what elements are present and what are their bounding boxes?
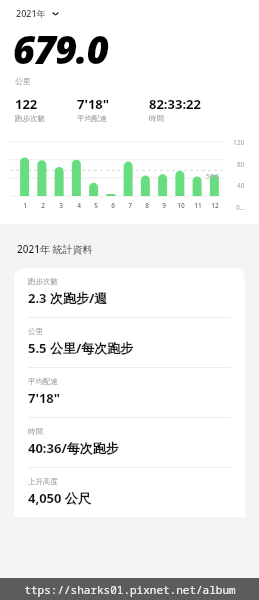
staticText: 9 bbox=[162, 201, 166, 210]
button[interactable]: 跑步次數 bbox=[14, 268, 245, 317]
staticText: 40 bbox=[237, 181, 245, 190]
staticText: 1 bbox=[23, 201, 27, 210]
staticText: 2021年 統計資料 bbox=[17, 242, 93, 256]
staticText: 2.3 次跑步/週 bbox=[28, 289, 108, 307]
staticText: 5.5 公里/每次跑步 bbox=[28, 339, 134, 357]
staticText: 120 bbox=[233, 138, 245, 147]
staticText: 8 bbox=[145, 201, 149, 210]
staticText: 56.6 bbox=[206, 172, 219, 181]
staticText: 7 bbox=[128, 201, 132, 210]
staticText: 122 bbox=[15, 95, 38, 113]
button[interactable]: 7'18" bbox=[77, 95, 149, 123]
staticText: 40:36/每次跑步 bbox=[28, 439, 119, 457]
staticText: 3 bbox=[59, 201, 63, 210]
staticText: 80 bbox=[237, 160, 245, 169]
staticText: 2 bbox=[41, 201, 45, 210]
button[interactable]: 時間 bbox=[14, 417, 245, 467]
button[interactable]: 公里 bbox=[14, 317, 245, 367]
button[interactable]: 平均配速 bbox=[14, 367, 245, 417]
staticText: 82:33:22 bbox=[149, 95, 201, 113]
button[interactable]: 上升高度 bbox=[14, 467, 245, 517]
staticText: 5 bbox=[94, 201, 98, 210]
staticText: 0... bbox=[236, 203, 245, 212]
staticText: 時間 bbox=[28, 427, 43, 436]
staticText: 10 bbox=[177, 201, 185, 210]
staticText: 公里 bbox=[15, 76, 31, 86]
staticText: ttps://sharks01.pixnet.net/album bbox=[24, 582, 236, 597]
staticText: 679.0 bbox=[13, 23, 108, 75]
staticText: 2021年 bbox=[16, 7, 46, 19]
staticText: 12 bbox=[211, 201, 219, 210]
button[interactable]: 122 bbox=[15, 95, 77, 123]
staticText: 6 bbox=[111, 201, 115, 210]
staticText: 4 bbox=[77, 201, 81, 210]
button[interactable]: 2021年 bbox=[14, 5, 62, 21]
staticText: 公里 bbox=[28, 327, 43, 336]
staticText: 時間 bbox=[149, 114, 164, 123]
staticText: 4,050 公尺 bbox=[28, 489, 91, 507]
button[interactable]: 82:33:22 bbox=[149, 95, 239, 123]
staticText: 7'18" bbox=[28, 389, 60, 407]
staticText: 平均配速 bbox=[77, 114, 107, 123]
staticText: 跑步次數 bbox=[28, 277, 58, 286]
staticText: 7'18" bbox=[77, 95, 109, 113]
staticText: 平均配速 bbox=[28, 377, 58, 386]
staticText: 11 bbox=[194, 201, 202, 210]
staticText: 上升高度 bbox=[28, 477, 58, 486]
staticText: 跑步次數 bbox=[15, 114, 45, 123]
